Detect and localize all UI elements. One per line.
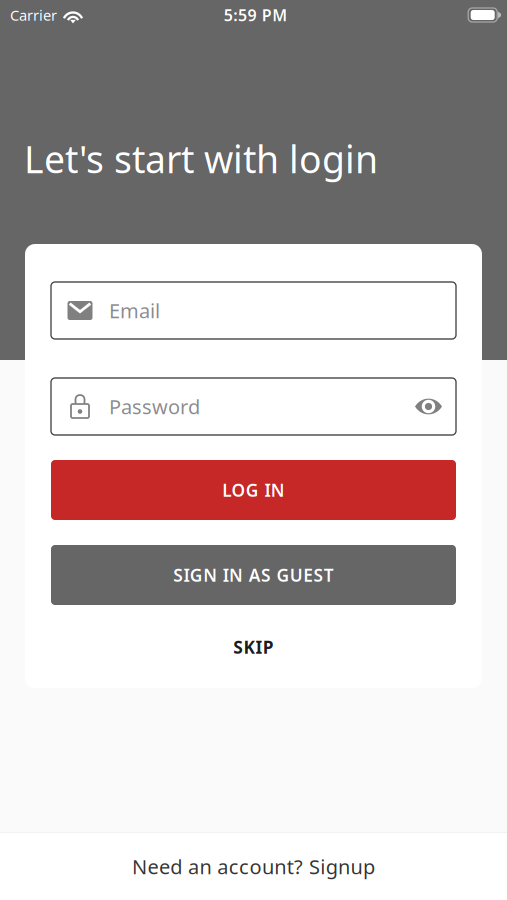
staticText: SKIP [233,635,274,658]
staticText: Let's start with login [24,134,378,184]
staticText: Need an account? Signup [132,853,375,880]
staticText: Email [109,297,160,324]
button[interactable]: LOG IN [51,460,456,520]
staticText: SIGN IN AS GUEST [173,563,334,586]
staticText: 5:59 PM [224,4,287,26]
staticText: LOG IN [222,478,285,501]
staticText: Password [109,393,200,420]
button[interactable]: Need an account? Signup [0,832,507,900]
button[interactable]: SIGN IN AS GUEST [51,545,456,605]
staticText: Carrier [10,5,57,25]
button[interactable]: Show password [407,397,442,416]
button[interactable]: SKIP [51,626,456,668]
